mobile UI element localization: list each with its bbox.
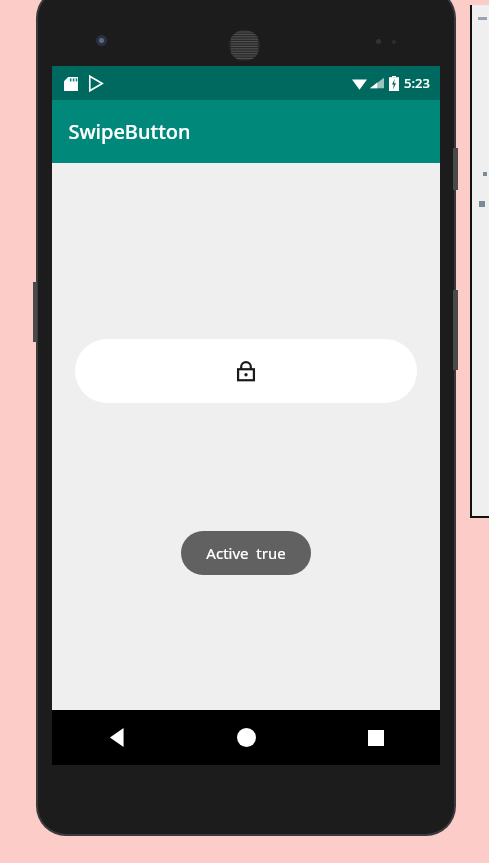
button[interactable]: Active true bbox=[181, 531, 311, 575]
button[interactable]: Home bbox=[182, 710, 311, 765]
staticText: Active true bbox=[206, 543, 286, 563]
staticText: SwipeButton bbox=[68, 118, 191, 145]
button[interactable]: Back bbox=[52, 710, 182, 765]
staticText: 5:23 bbox=[404, 74, 430, 92]
button[interactable]: Swipe to unlock bbox=[75, 339, 417, 403]
button[interactable]: Recents bbox=[311, 710, 440, 765]
